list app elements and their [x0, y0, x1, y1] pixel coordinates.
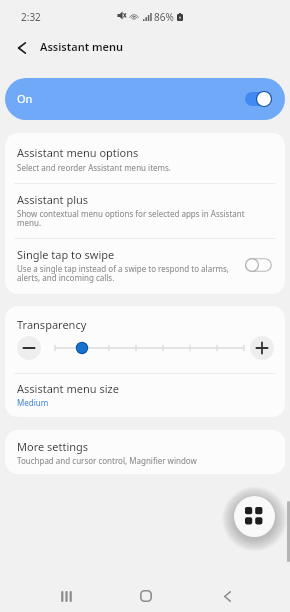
- button[interactable]: Increase transparency: [250, 336, 274, 360]
- button[interactable]: Assistant menu size: [5, 373, 285, 417]
- button[interactable]: More settings: [5, 430, 285, 474]
- staticText: On: [17, 91, 33, 106]
- button[interactable]: Recent apps: [48, 579, 82, 612]
- staticText: Show contextual menu options for selecte…: [17, 208, 245, 229]
- button[interactable]: Navigate up: [10, 36, 34, 60]
- staticText: Transparency: [17, 317, 87, 332]
- button[interactable]: Assistant menu: [234, 496, 275, 537]
- staticText: Single tap to swipe: [17, 247, 115, 262]
- button[interactable]: On: [5, 78, 285, 120]
- staticText: Assistant plus: [17, 192, 89, 207]
- staticText: 86%: [154, 10, 174, 24]
- button[interactable]: Home: [129, 579, 163, 612]
- button[interactable]: Decrease transparency: [17, 336, 41, 360]
- staticText: Touchpad and cursor control, Magnifier w…: [17, 455, 197, 466]
- staticText: Select and reorder Assistant menu items.: [17, 162, 172, 173]
- button[interactable]: Assistant plus: [5, 183, 285, 238]
- staticText: Medium: [17, 397, 49, 408]
- button[interactable]: Single tap to swipe: [5, 238, 285, 294]
- button[interactable]: Assistant menu options: [5, 133, 285, 183]
- button[interactable]: Back: [210, 579, 244, 612]
- staticText: Assistant menu: [40, 39, 124, 54]
- staticText: Assistant menu options: [17, 145, 139, 160]
- staticText: Assistant menu size: [17, 381, 119, 396]
- staticText: Use a single tap instead of a swipe to r…: [17, 263, 229, 284]
- staticText: More settings: [17, 439, 89, 454]
- staticText: 2:32: [21, 10, 41, 24]
